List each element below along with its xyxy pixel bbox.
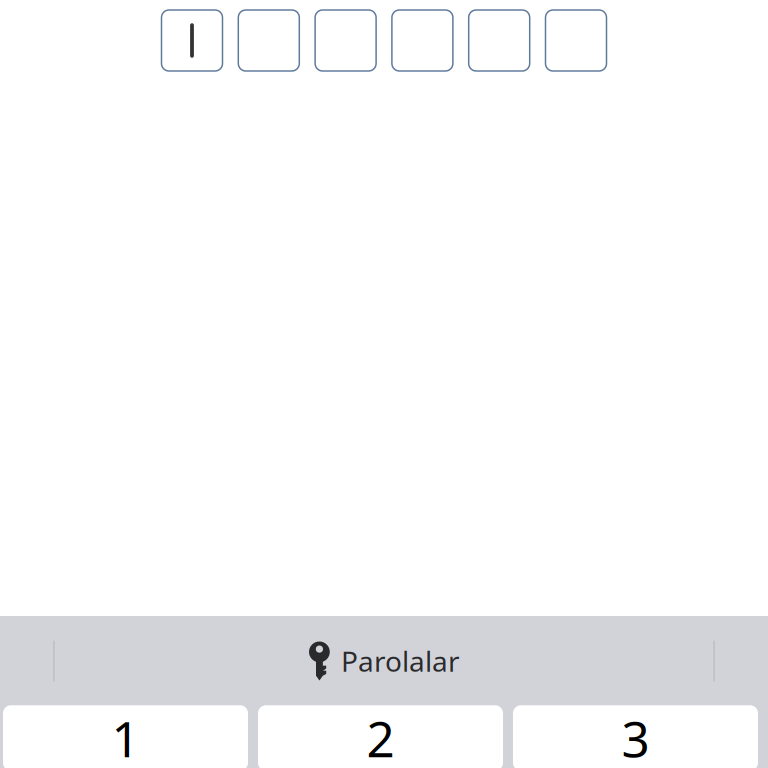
button[interactable]: Code field <box>392 10 453 71</box>
staticText: 3 <box>621 705 649 768</box>
button[interactable]: Code field <box>238 10 299 71</box>
staticText: 1 <box>111 705 139 768</box>
button[interactable]: 2 <box>258 706 503 768</box>
button[interactable]: Code field <box>315 10 376 71</box>
button[interactable]: Code field <box>469 10 530 71</box>
staticText: 2 <box>366 705 394 768</box>
button[interactable]: Parolalar <box>308 641 460 680</box>
staticText: Parolalar <box>341 642 460 680</box>
button[interactable]: Code field, editing <box>161 10 222 71</box>
button[interactable]: 3 <box>513 706 758 768</box>
button[interactable]: 1 <box>3 706 248 768</box>
button[interactable]: Code field <box>545 10 606 71</box>
